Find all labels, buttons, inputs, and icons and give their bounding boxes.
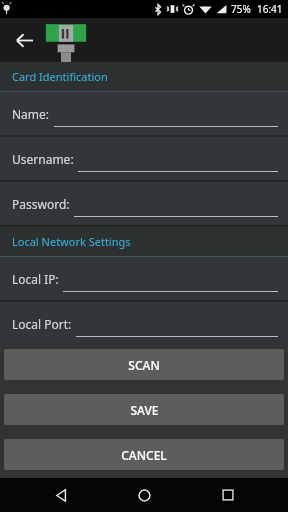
staticText: Local IP:: [12, 271, 59, 287]
button[interactable]: Back: [38, 478, 84, 512]
button[interactable]: Username:: [0, 137, 288, 180]
staticText: CANCEL: [121, 447, 167, 463]
button[interactable]: Local IP:: [0, 257, 288, 300]
staticText: Card Identification: [12, 69, 108, 84]
button[interactable]: App icon: [45, 18, 87, 62]
staticText: 75%: [231, 2, 251, 16]
staticText: SCAN: [128, 357, 160, 373]
staticText: Local Port:: [12, 316, 72, 332]
button[interactable]: SAVE: [4, 394, 284, 425]
button[interactable]: Password:: [0, 182, 288, 225]
staticText: Password:: [12, 196, 70, 212]
staticText: Name:: [12, 106, 50, 122]
staticText: SAVE: [130, 402, 159, 418]
button[interactable]: Recent apps: [205, 478, 251, 512]
staticText: Username:: [12, 151, 74, 167]
button[interactable]: Local Port:: [0, 302, 288, 345]
button[interactable]: Back: [6, 22, 42, 58]
button[interactable]: SCAN: [4, 349, 284, 380]
button[interactable]: Name:: [0, 92, 288, 135]
button[interactable]: CANCEL: [4, 439, 284, 470]
button[interactable]: Home: [121, 478, 167, 512]
staticText: Local Network Settings: [12, 234, 131, 249]
staticText: 16:41: [257, 2, 283, 16]
